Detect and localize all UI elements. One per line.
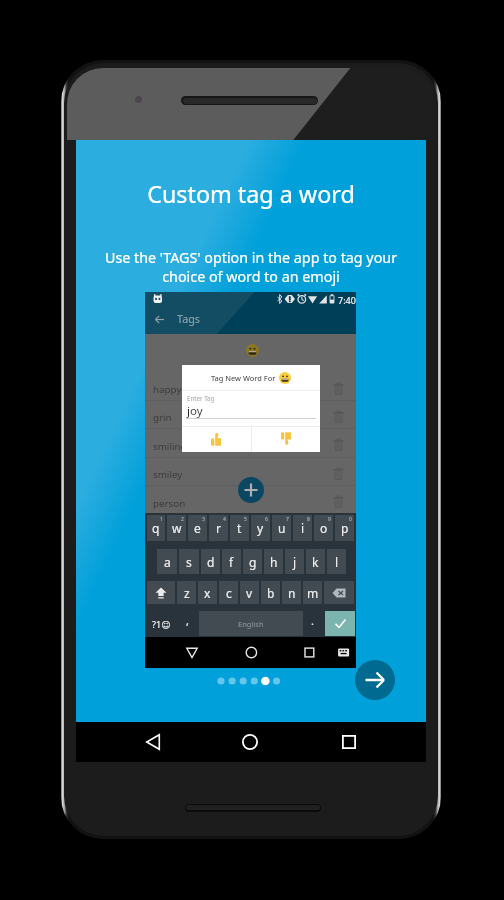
button[interactable]: k <box>306 549 325 574</box>
button[interactable] <box>145 401 356 429</box>
button[interactable]: Symbols <box>145 611 177 636</box>
staticText: o <box>320 520 328 536</box>
staticText: 4 <box>223 516 226 523</box>
button[interactable]: Space <box>199 611 303 636</box>
staticText: 1 <box>160 516 163 523</box>
button[interactable]: a <box>157 549 177 574</box>
staticText: d <box>207 554 215 570</box>
button[interactable]: e <box>188 515 207 541</box>
staticText: b <box>267 585 275 601</box>
staticText: Tag New Word For <box>211 373 276 383</box>
staticText: c <box>226 585 232 601</box>
button[interactable] <box>145 458 356 486</box>
button[interactable]: c <box>219 581 238 604</box>
staticText: p <box>341 520 349 536</box>
staticText: 3 <box>202 516 205 523</box>
button[interactable]: . <box>304 611 320 636</box>
button[interactable]: Recent apps <box>333 722 365 762</box>
button[interactable]: h <box>264 549 283 574</box>
button[interactable]: Thumbs up <box>182 426 250 452</box>
button[interactable]: i <box>293 515 312 541</box>
staticText: , <box>186 613 189 628</box>
staticText: Tags <box>177 311 201 326</box>
staticText: g <box>249 554 257 570</box>
button[interactable]: z <box>177 581 196 604</box>
button[interactable]: , <box>178 611 197 636</box>
staticText: English <box>238 619 264 629</box>
button[interactable]: m <box>303 581 322 604</box>
staticText: w <box>172 520 182 536</box>
button[interactable]: Add tag <box>238 477 264 503</box>
staticText: . <box>311 613 314 628</box>
staticText: happy <box>153 383 182 396</box>
staticText: f <box>229 554 234 570</box>
staticText: person <box>153 497 186 510</box>
staticText: v <box>246 585 253 601</box>
staticText: smiley <box>153 468 183 481</box>
button[interactable]: x <box>198 581 217 604</box>
button[interactable]: g <box>243 549 262 574</box>
staticText: Enter Tag <box>187 394 215 402</box>
staticText: joy <box>187 403 203 419</box>
button[interactable]: w <box>167 515 186 541</box>
staticText: 2 <box>181 516 184 523</box>
button[interactable]: d <box>201 549 220 574</box>
staticText: ?1☺ <box>152 618 171 630</box>
staticText: i <box>301 520 305 536</box>
button[interactable]: Shift <box>147 581 175 604</box>
staticText: 5 <box>244 516 247 523</box>
staticText: t <box>237 520 242 536</box>
staticText: s <box>186 554 192 570</box>
staticText: 9 <box>328 516 331 523</box>
button[interactable]: Back <box>137 722 169 762</box>
staticText: l <box>335 554 339 570</box>
button[interactable]: Thumbs down <box>251 426 320 452</box>
staticText: smiling <box>153 440 187 453</box>
staticText: k <box>312 554 319 570</box>
button[interactable]: r <box>209 515 228 541</box>
button[interactable] <box>145 487 356 515</box>
button[interactable]: Enter <box>325 611 355 636</box>
staticText: 0 <box>349 516 352 523</box>
staticText: 6 <box>265 516 268 523</box>
staticText: 7:40 <box>338 294 356 306</box>
button[interactable]: u <box>272 515 291 541</box>
button[interactable]: t <box>230 515 249 541</box>
staticText: e <box>194 520 201 536</box>
staticText: r <box>216 520 221 536</box>
button[interactable]: n <box>282 581 301 604</box>
button[interactable]: y <box>251 515 270 541</box>
staticText: h <box>270 554 278 570</box>
button[interactable]: q <box>147 515 165 541</box>
button[interactable]: Backspace <box>324 581 354 604</box>
staticText: y <box>257 520 264 536</box>
button[interactable]: v <box>240 581 259 604</box>
staticText: 8 <box>307 516 310 523</box>
staticText: grin <box>153 411 172 424</box>
button[interactable] <box>145 430 356 458</box>
staticText: x <box>204 585 211 601</box>
staticText: Use the 'TAGS' option in the app to tag … <box>76 248 426 286</box>
button[interactable]: o <box>314 515 333 541</box>
button[interactable]: Home <box>234 722 266 762</box>
staticText: z <box>184 585 190 601</box>
staticText: q <box>152 520 160 536</box>
button[interactable]: s <box>179 549 199 574</box>
button[interactable]: p <box>335 515 354 541</box>
button[interactable]: b <box>261 581 280 604</box>
staticText: m <box>307 585 319 601</box>
staticText: u <box>278 520 286 536</box>
button[interactable]: j <box>285 549 304 574</box>
staticText: n <box>288 585 296 601</box>
staticText: 7 <box>286 516 289 523</box>
staticText: a <box>164 554 171 570</box>
button[interactable]: l <box>327 549 346 574</box>
staticText: j <box>293 554 297 570</box>
button[interactable] <box>145 373 356 401</box>
button[interactable]: Next page <box>355 660 395 700</box>
button[interactable]: f <box>222 549 241 574</box>
staticText: Custom tag a word <box>76 178 426 210</box>
